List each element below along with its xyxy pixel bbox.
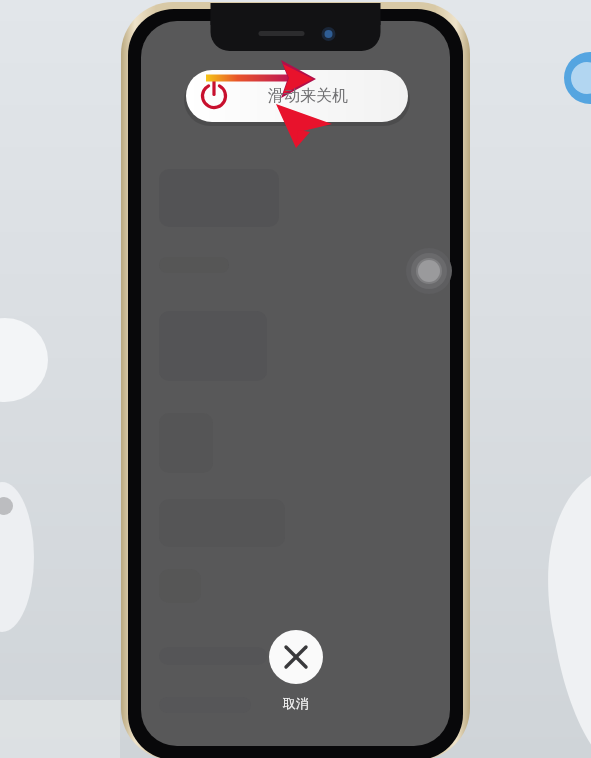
button[interactable]: 滑动来关机: [186, 70, 408, 122]
staticText: 滑动来关机: [268, 86, 348, 106]
button[interactable]: 取消: [266, 692, 326, 714]
button[interactable]: 取消: [269, 630, 323, 684]
button[interactable]: AssistiveTouch: [406, 248, 452, 294]
staticText: 取消: [283, 695, 309, 711]
